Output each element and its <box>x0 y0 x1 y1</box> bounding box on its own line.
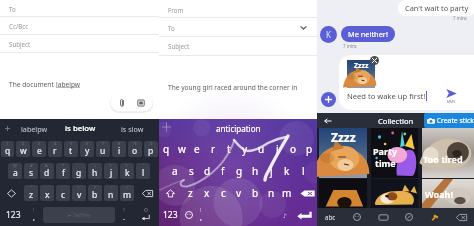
staticText: Subject <box>168 42 190 50</box>
button[interactable]: m <box>279 182 295 204</box>
button[interactable]: l <box>295 160 311 182</box>
button[interactable]: Add attachment <box>321 92 336 107</box>
button[interactable]: ? <box>88 185 102 201</box>
button[interactable]: v <box>231 182 247 204</box>
button[interactable]: 123 <box>0 204 26 226</box>
button[interactable]: Can't wait to party <box>398 0 474 16</box>
button[interactable]: e <box>189 138 205 160</box>
staticText: k <box>125 167 130 179</box>
button[interactable]: q <box>159 138 174 160</box>
button[interactable]: Emoji <box>344 208 370 226</box>
button[interactable]: Remove attachment <box>370 56 379 65</box>
button[interactable]: 7 <box>96 141 110 157</box>
button[interactable]: k <box>279 160 295 182</box>
button[interactable]: 2 <box>16 141 30 157</box>
button[interactable]: ; <box>56 185 70 201</box>
staticText: j <box>270 164 273 178</box>
button[interactable]: is slow <box>106 119 159 138</box>
staticText: Party <box>373 145 398 157</box>
button[interactable]: y <box>237 138 253 160</box>
button[interactable]: 8 <box>112 141 126 157</box>
button[interactable]: p <box>301 138 317 160</box>
button[interactable]: GIF <box>370 208 396 226</box>
button[interactable]: Party <box>371 128 418 178</box>
button[interactable]: / <box>120 185 134 201</box>
button[interactable]: # <box>24 163 38 179</box>
button[interactable]: Expand recipients <box>298 22 309 33</box>
button[interactable] <box>371 179 418 208</box>
button[interactable]: o <box>285 138 301 160</box>
button[interactable]: 3 <box>32 141 46 157</box>
button[interactable]: Backspace <box>448 208 474 226</box>
button[interactable]: Backspace <box>135 182 159 204</box>
button[interactable]: Shift <box>159 182 182 204</box>
button[interactable]: 9 <box>128 141 142 157</box>
button[interactable]: g <box>231 160 247 182</box>
button[interactable]: Enter <box>291 204 317 226</box>
button[interactable]: SwiftKey <box>43 207 115 223</box>
button[interactable]: u <box>253 138 269 160</box>
button[interactable]: ? <box>116 204 132 226</box>
button[interactable]: h <box>247 160 263 182</box>
button[interactable]: anticipation <box>173 119 303 138</box>
button[interactable]: ! <box>72 185 86 201</box>
button[interactable]: ( <box>104 163 118 179</box>
button[interactable]: 6 <box>80 141 94 157</box>
button[interactable]: Me neither! <box>341 26 395 42</box>
button[interactable]: c <box>215 182 231 204</box>
button[interactable]: a <box>166 160 183 182</box>
button[interactable]: 5 <box>64 141 78 157</box>
button[interactable]: labelpw <box>14 119 54 138</box>
button[interactable]: ! <box>26 204 42 226</box>
button[interactable]: Emoji <box>182 204 195 226</box>
button[interactable]: + <box>88 163 102 179</box>
button[interactable]: w <box>174 138 189 160</box>
button[interactable]: f <box>215 160 231 182</box>
button[interactable]: r <box>205 138 221 160</box>
button[interactable]: j <box>263 160 279 182</box>
button[interactable]: b <box>247 182 263 204</box>
button[interactable]: Enter <box>132 204 159 226</box>
button[interactable] <box>206 204 278 226</box>
button[interactable]: Stickers <box>396 208 422 226</box>
staticText: f <box>221 164 225 178</box>
button[interactable]: ' <box>136 163 150 179</box>
staticText: Collection <box>378 116 414 126</box>
button[interactable]: " <box>24 185 38 201</box>
button[interactable]: abc <box>317 208 344 226</box>
button[interactable]: * <box>56 163 70 179</box>
button[interactable]: Send MMS <box>446 88 457 104</box>
button[interactable]: Backspace <box>295 182 317 204</box>
button[interactable]: Create sticker <box>424 113 474 128</box>
button[interactable]: 1 <box>1 141 14 157</box>
button[interactable] <box>319 179 367 208</box>
button[interactable]: Woah! <box>422 179 474 208</box>
button[interactable]: ! <box>195 204 206 226</box>
button[interactable]: d <box>199 160 215 182</box>
button[interactable]: i <box>269 138 285 160</box>
button[interactable]: 123 <box>159 204 182 226</box>
button[interactable]: Pin <box>422 208 448 226</box>
button[interactable]: n <box>263 182 279 204</box>
button[interactable]: & <box>40 163 54 179</box>
button[interactable]: 4 <box>48 141 62 157</box>
button[interactable]: t <box>221 138 237 160</box>
button[interactable]: ~ <box>104 185 118 201</box>
button[interactable]: - <box>72 163 86 179</box>
button[interactable]: @ <box>8 163 22 179</box>
button[interactable]: ♪ <box>278 204 291 226</box>
button[interactable]: x <box>199 182 215 204</box>
button[interactable]: s <box>183 160 199 182</box>
button[interactable]: Attach file <box>109 92 154 113</box>
button[interactable]: 0 <box>144 141 158 157</box>
staticText: r <box>211 142 216 156</box>
button[interactable]: Shift <box>0 182 23 204</box>
button[interactable]: Zzzz <box>319 128 367 178</box>
button[interactable]: Too tired <box>422 128 474 178</box>
button[interactable]: z <box>182 182 199 204</box>
button[interactable]: Add to dictionary <box>0 119 14 138</box>
button[interactable]: ) <box>120 163 134 179</box>
button[interactable]: : <box>40 185 54 201</box>
button[interactable]: Back <box>317 113 339 128</box>
button[interactable]: is below <box>54 119 106 138</box>
